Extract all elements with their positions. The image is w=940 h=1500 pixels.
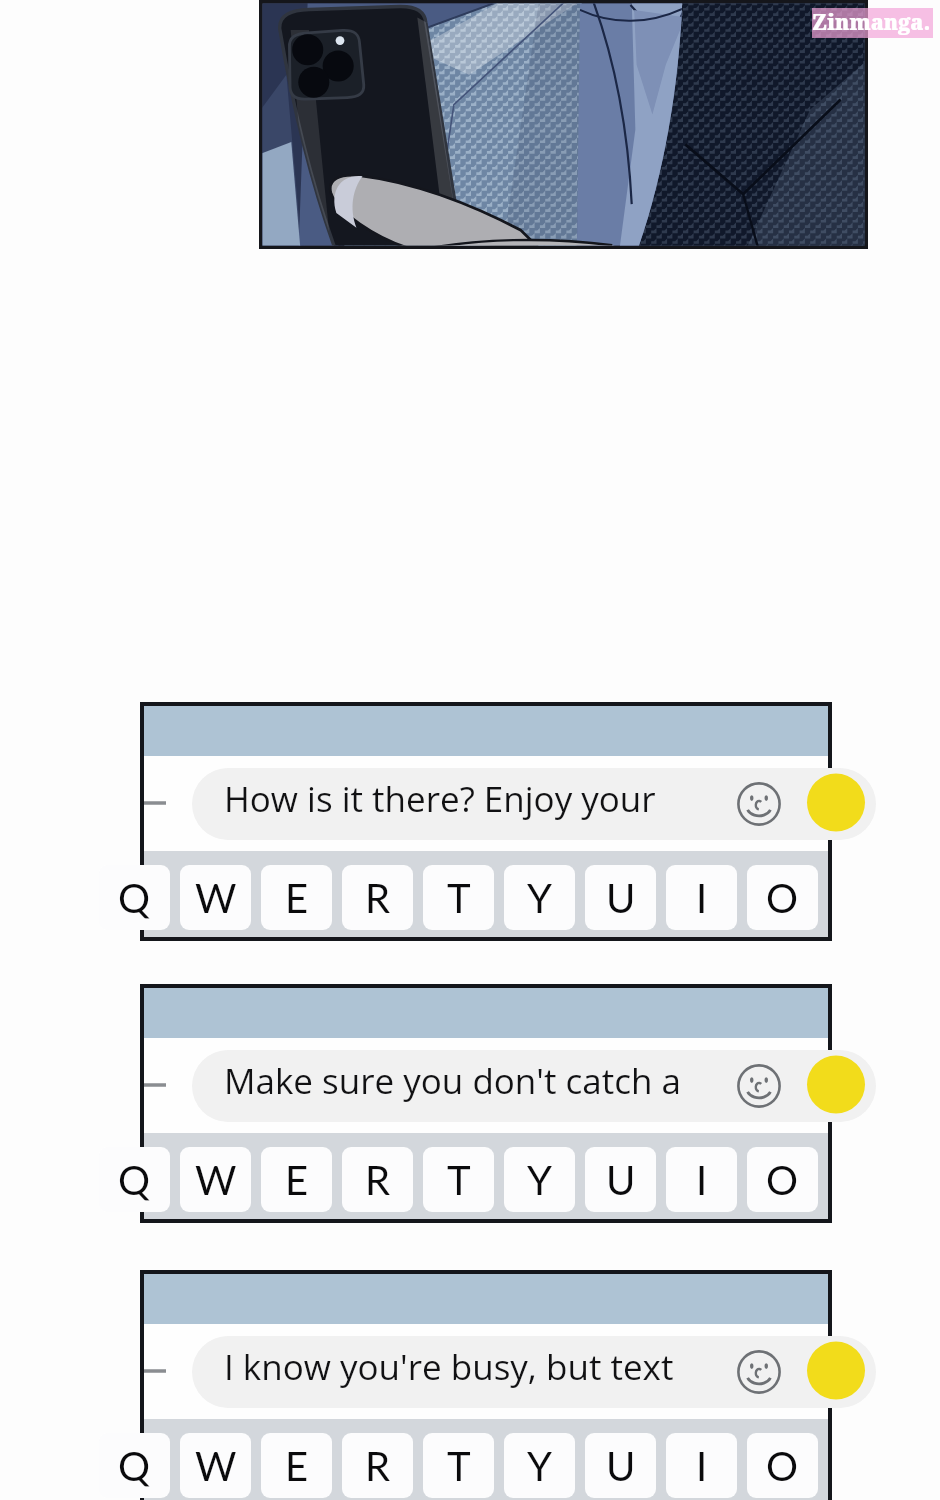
staticText: R <box>365 1156 391 1204</box>
button[interactable]: E <box>261 1147 332 1212</box>
staticText: E <box>285 1156 309 1204</box>
button[interactable]: R <box>342 1147 413 1212</box>
button[interactable]: E <box>261 1433 332 1498</box>
button[interactable]: O <box>747 1433 818 1498</box>
staticText: I <box>696 1156 708 1204</box>
button[interactable]: O <box>747 865 818 930</box>
button[interactable]: Q <box>99 1433 170 1498</box>
button[interactable]: I <box>666 1147 737 1212</box>
button[interactable]: U <box>585 1433 656 1498</box>
button[interactable] <box>192 768 876 840</box>
staticText: Zinmanga.net <box>812 8 933 38</box>
staticText: O <box>766 1442 799 1490</box>
button[interactable]: W <box>180 1147 251 1212</box>
staticText: E <box>285 1442 309 1490</box>
staticText: R <box>365 1442 391 1490</box>
button[interactable]: T <box>423 1433 494 1498</box>
staticText: I <box>696 1442 708 1490</box>
staticText: Y <box>527 1156 552 1204</box>
staticText: O <box>766 874 799 922</box>
staticText: U <box>606 1442 636 1490</box>
staticText: U <box>606 1156 636 1204</box>
button[interactable]: I <box>666 1433 737 1498</box>
staticText: W <box>195 874 237 922</box>
button[interactable] <box>192 1336 876 1408</box>
button[interactable]: Emoji <box>737 782 781 826</box>
button[interactable]: T <box>423 1147 494 1212</box>
staticText: T <box>447 1442 471 1490</box>
button[interactable]: U <box>585 1147 656 1212</box>
staticText: T <box>447 874 471 922</box>
staticText: I <box>696 874 708 922</box>
button[interactable]: E <box>261 865 332 930</box>
button[interactable]: Emoji <box>737 1064 781 1108</box>
staticText: Q <box>118 874 151 922</box>
staticText: Make sure you don't catch a <box>224 1057 682 1105</box>
button[interactable]: Zinmanga.net watermark <box>812 8 933 38</box>
button[interactable]: Y <box>504 865 575 930</box>
staticText: How is it there? Enjoy your <box>224 775 656 823</box>
staticText: W <box>195 1156 237 1204</box>
staticText: E <box>285 874 309 922</box>
button[interactable]: R <box>342 865 413 930</box>
button[interactable]: How is it there? Enjoy your <box>144 706 828 937</box>
staticText: Y <box>527 874 552 922</box>
button[interactable]: W <box>180 1433 251 1498</box>
button[interactable]: Emoji <box>737 1350 781 1394</box>
button[interactable]: Comic panel <box>259 0 868 249</box>
button[interactable] <box>192 1050 876 1122</box>
staticText: Q <box>118 1442 151 1490</box>
button[interactable]: O <box>747 1147 818 1212</box>
button[interactable]: I <box>666 865 737 930</box>
staticText: O <box>766 1156 799 1204</box>
staticText: Q <box>118 1156 151 1204</box>
button[interactable]: Y <box>504 1147 575 1212</box>
staticText: Y <box>527 1442 552 1490</box>
button[interactable]: R <box>342 1433 413 1498</box>
button[interactable]: U <box>585 865 656 930</box>
staticText: W <box>195 1442 237 1490</box>
staticText: R <box>365 874 391 922</box>
button[interactable]: Q <box>99 1147 170 1212</box>
button[interactable]: I know you're busy, but text <box>144 1274 828 1500</box>
button[interactable]: Y <box>504 1433 575 1498</box>
button[interactable]: Make sure you don't catch a <box>144 988 828 1219</box>
staticText: I know you're busy, but text <box>224 1343 674 1391</box>
staticText: U <box>606 874 636 922</box>
button[interactable]: W <box>180 865 251 930</box>
staticText: T <box>447 1156 471 1204</box>
button[interactable]: T <box>423 865 494 930</box>
button[interactable]: Q <box>99 865 170 930</box>
